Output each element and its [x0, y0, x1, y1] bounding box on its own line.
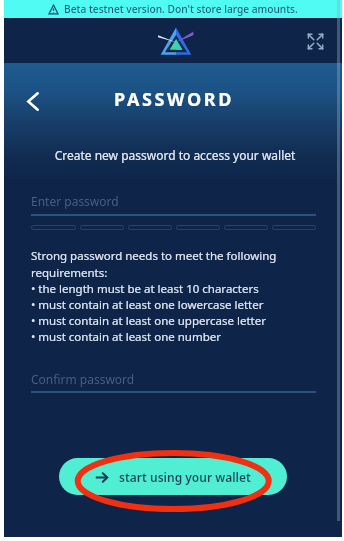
button[interactable]: Expand screen	[303, 29, 327, 53]
staticText: • must contain at least one lowercase le…	[31, 297, 264, 313]
staticText: Enter password	[31, 193, 119, 209]
staticText: Strong password needs to meet the follow…	[31, 248, 311, 281]
staticText: start using your wallet	[119, 469, 251, 485]
staticText: Confirm password	[31, 371, 135, 387]
button[interactable]: Back	[18, 86, 48, 116]
staticText: • must contain at least one number	[31, 329, 222, 345]
staticText: Create new password to access your walle…	[6, 147, 344, 163]
staticText: • the length must be at least 10 charact…	[31, 281, 259, 297]
staticText: Beta testnet version. Don't store large …	[64, 2, 298, 16]
button[interactable]: start using your wallet	[59, 458, 287, 495]
staticText: • must contain at least one uppercase le…	[31, 313, 266, 329]
staticText: PASSWORD	[5, 87, 343, 112]
